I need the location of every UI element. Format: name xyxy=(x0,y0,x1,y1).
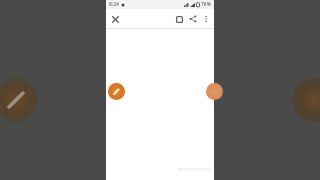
button[interactable]: Share xyxy=(186,12,200,26)
staticText: screen record xyxy=(177,166,210,173)
staticText: 8:24 xyxy=(109,1,119,8)
button[interactable]: Edit xyxy=(108,83,125,100)
button[interactable]: Save xyxy=(172,12,186,26)
button[interactable]: Close xyxy=(108,12,122,26)
button[interactable]: More options xyxy=(200,13,212,25)
staticText: 76% xyxy=(201,1,211,8)
